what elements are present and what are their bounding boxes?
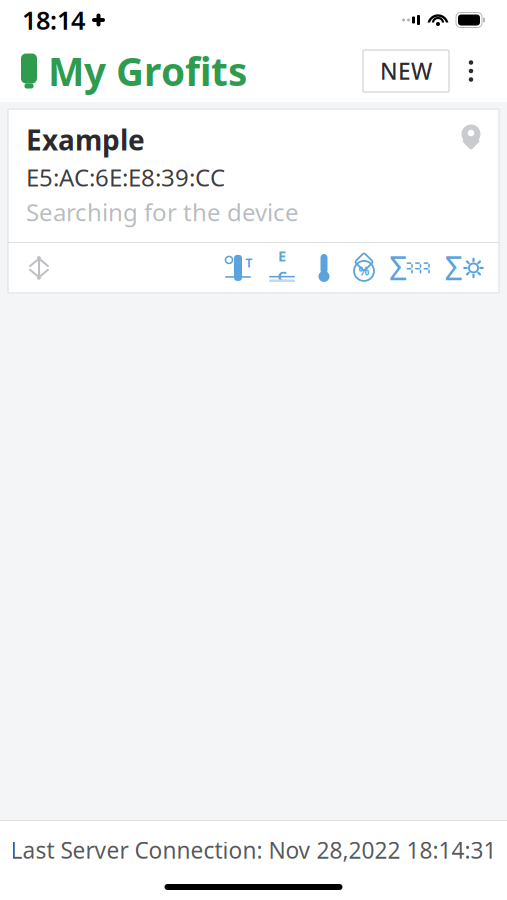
staticText: E (278, 246, 286, 265)
button[interactable]: Device location (459, 121, 485, 151)
staticText: E5:AC:6E:E8:39:CC (26, 161, 225, 193)
staticText: % (358, 263, 369, 279)
staticText: Σ (444, 247, 462, 289)
button[interactable]: Temperature (311, 253, 337, 283)
staticText: Example (26, 121, 145, 158)
staticText: NEW (380, 56, 432, 86)
button[interactable]: pH and temperature (223, 253, 253, 283)
button[interactable]: Electrical conductivity (267, 253, 297, 283)
staticText: 18:14 (22, 3, 85, 37)
button[interactable]: NEW (363, 50, 449, 92)
button[interactable]: Accumulated heat (391, 253, 429, 283)
staticText: Σ (389, 247, 407, 289)
staticText: My Grofits (48, 45, 247, 97)
staticText: Searching for the device (26, 196, 299, 228)
staticText: C (277, 266, 286, 286)
button[interactable]: Accumulated light (443, 253, 485, 283)
button[interactable]: Bluetooth (26, 254, 52, 282)
staticText: T (245, 255, 252, 271)
button[interactable]: More options (449, 47, 493, 95)
button[interactable]: Humidity (351, 253, 377, 283)
staticText: Last Server Connection: Nov 28,2022 18:1… (10, 835, 496, 865)
